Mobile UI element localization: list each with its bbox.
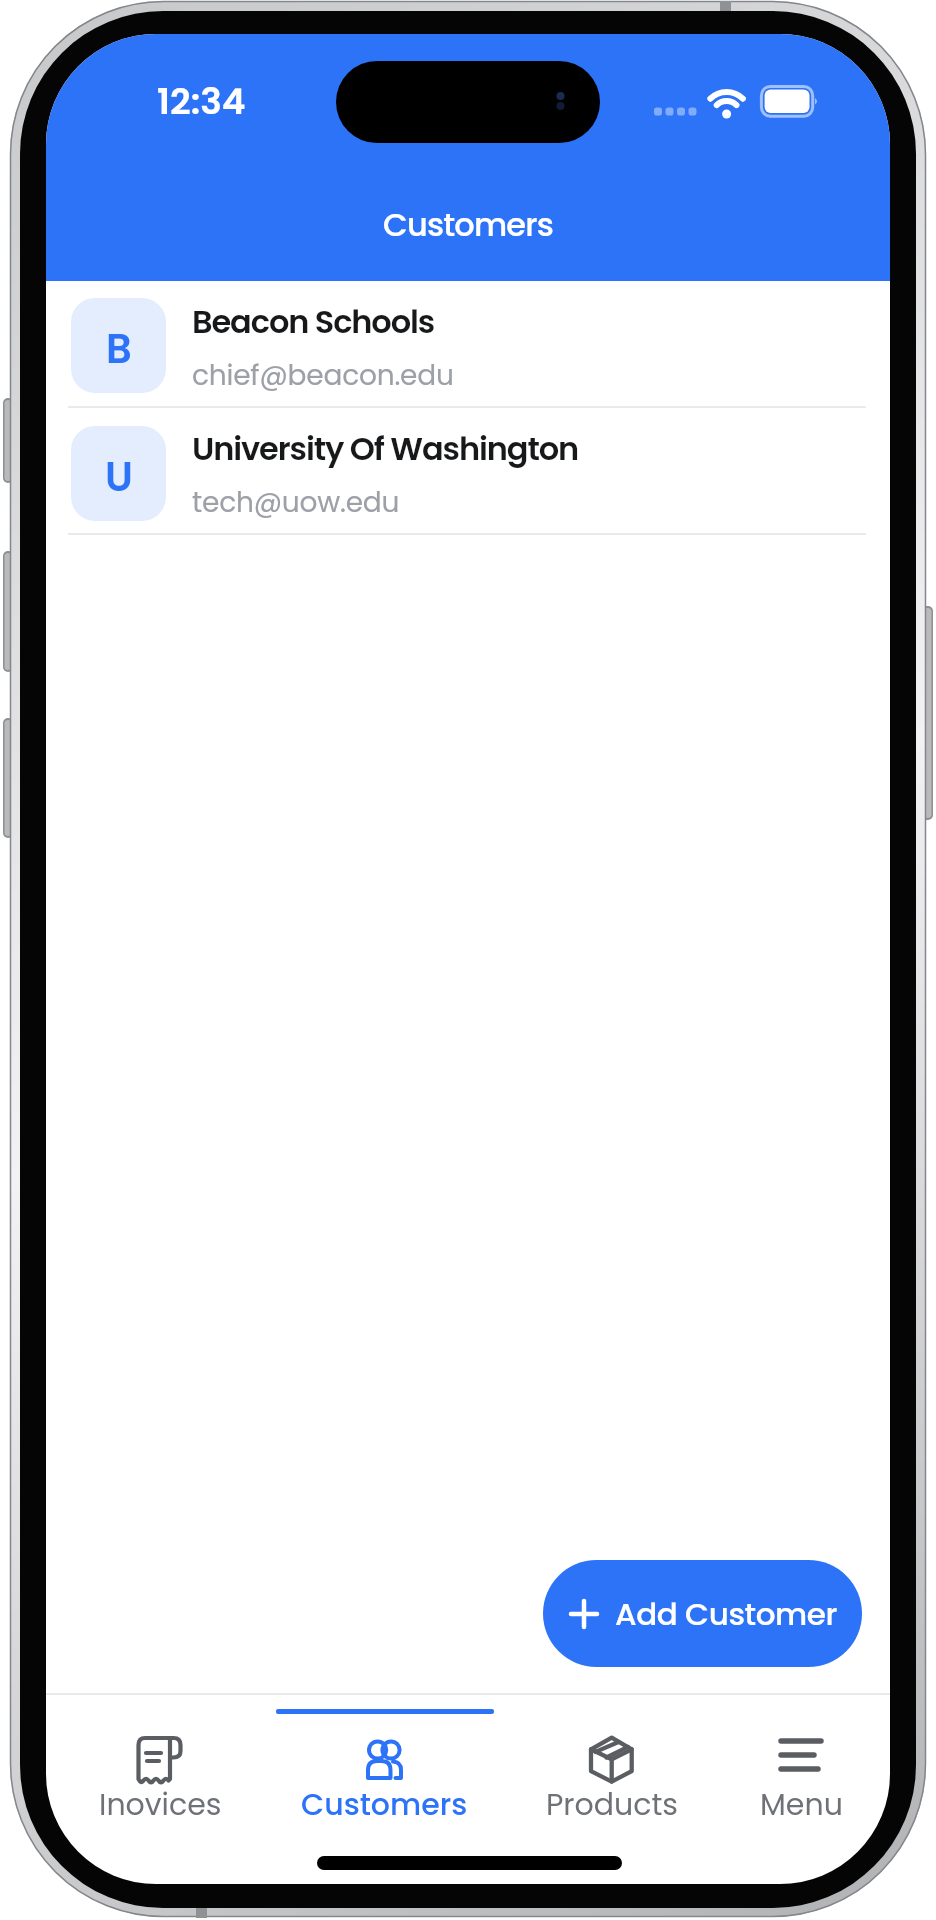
- button[interactable]: B: [46, 281, 890, 406]
- staticText: Menu: [760, 1784, 843, 1826]
- staticText: 12:34: [157, 76, 246, 126]
- button[interactable]: Add Customer: [543, 1560, 862, 1667]
- staticText: chief@beacon.edu: [192, 356, 454, 395]
- staticText: B: [106, 321, 132, 377]
- staticText: Add Customer: [615, 1592, 838, 1635]
- staticText: Customers: [383, 202, 554, 247]
- button[interactable]: Menu: [701, 1726, 890, 1834]
- staticText: Products: [546, 1784, 679, 1826]
- staticText: tech@uow.edu: [192, 483, 400, 522]
- staticText: University Of Washington: [192, 426, 579, 471]
- button[interactable]: Inovices: [60, 1726, 260, 1834]
- button[interactable]: Products: [512, 1726, 712, 1834]
- staticText: U: [105, 449, 133, 505]
- button[interactable]: Customers: [284, 1726, 484, 1834]
- staticText: Inovices: [99, 1784, 222, 1826]
- staticText: Customers: [301, 1784, 468, 1826]
- staticText: Beacon Schools: [192, 299, 435, 344]
- button[interactable]: U: [46, 408, 890, 533]
